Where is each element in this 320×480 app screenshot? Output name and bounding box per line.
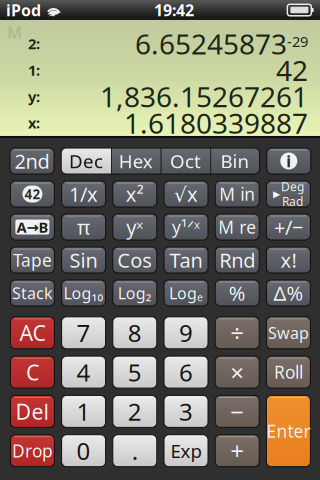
staticText: 7 [77,317,91,349]
button[interactable]: Cos [113,247,157,273]
button[interactable]: Info [267,148,311,174]
staticText: Rnd [219,247,255,273]
staticText: Log₁₀ [64,282,104,304]
button[interactable]: . [113,435,157,467]
staticText: y¹ᐟˣ [172,215,200,238]
button[interactable]: +/− [266,214,310,240]
button[interactable]: Exp [164,435,208,467]
staticText: Tan [169,247,202,273]
staticText: 3 [179,395,193,427]
staticText: Roll [274,361,303,384]
staticText: AC [19,319,45,347]
button[interactable]: 3 [164,395,208,427]
staticText: Cos [117,247,152,273]
button[interactable]: 2 [113,395,157,427]
button[interactable]: C [10,356,54,388]
button[interactable]: Roll [266,356,310,388]
button[interactable]: ÷ [215,317,259,349]
staticText: C [26,358,39,386]
staticText: − [230,395,244,427]
button[interactable]: 9 [164,317,208,349]
button[interactable]: π [62,214,106,240]
staticText: ▶ [273,189,280,199]
staticText: yˣ [126,214,143,240]
staticText: A→B [16,217,48,237]
button[interactable]: − [215,395,259,427]
staticText: M re [218,215,256,238]
button[interactable]: AC [10,317,54,349]
staticText: 1,836.15267261 [100,78,308,115]
staticText: Exp [170,438,201,463]
staticText: 0 [77,435,91,467]
button[interactable]: y¹ᐟˣ [164,214,208,240]
staticText: M [7,22,22,43]
staticText: 42 [24,185,40,203]
button[interactable]: Sin [62,247,106,273]
staticText: Logₑ [169,282,203,304]
staticText: Del [15,397,49,425]
staticText: 6.65245873 [135,25,287,62]
button[interactable]: 5 [113,356,157,388]
staticText: M in [219,182,255,205]
button[interactable]: x! [266,247,310,273]
staticText: % [229,280,246,306]
button[interactable]: Dec [61,148,111,174]
staticText: Sin [70,247,98,273]
staticText: Oct [170,149,201,173]
button[interactable]: Logₑ [164,280,208,306]
button[interactable]: Drop [10,435,54,467]
button[interactable]: √x [164,181,208,207]
button[interactable]: Swap [266,317,310,349]
staticText: Hex [119,149,153,173]
button[interactable]: Enter [266,395,310,467]
staticText: × [230,356,244,388]
button[interactable]: 8 [113,317,157,349]
staticText: iPod [6,0,41,21]
button[interactable]: + [215,435,259,467]
staticText: 6 [179,356,193,388]
staticText: 4 [77,356,91,388]
button[interactable]: Oct [161,148,210,174]
button[interactable]: yˣ [113,214,157,240]
button[interactable]: 4 [62,356,106,388]
staticText: 1.6180339887 [124,104,308,141]
button[interactable]: Log₂ [113,280,157,306]
button[interactable]: Bin [210,148,260,174]
staticText: 2nd [14,148,49,174]
button[interactable]: % [215,280,259,306]
button[interactable]: Δ% [266,280,310,306]
staticText: x: [28,113,40,133]
button[interactable]: 2nd [10,148,54,174]
staticText: ÷ [230,317,244,349]
button[interactable]: x² [113,181,157,207]
button[interactable]: Constant 42 [10,181,54,207]
staticText: √x [174,181,198,207]
staticText: 2 [128,395,142,427]
button[interactable]: Tan [164,247,208,273]
button[interactable]: Convert A to B [10,214,54,240]
staticText: Enter [266,419,310,442]
button[interactable]: 1 [62,395,106,427]
button[interactable]: × [215,356,259,388]
button[interactable]: Hex [111,148,161,174]
staticText: Rad [282,193,303,209]
button[interactable]: Degrees or Radians [266,181,310,207]
button[interactable]: 6 [164,356,208,388]
staticText: Deg [281,179,304,194]
button[interactable]: 7 [62,317,106,349]
button[interactable]: Rnd [215,247,259,273]
button[interactable]: 1/x [62,181,106,207]
button[interactable]: Del [10,395,54,427]
staticText: 9 [179,317,193,349]
button[interactable]: Log₁₀ [62,280,106,306]
button[interactable]: 0 [62,435,106,467]
button[interactable]: Tape [10,247,54,273]
button[interactable]: Stack [10,280,54,306]
button[interactable]: M re [215,214,259,240]
staticText: y: [28,87,40,106]
staticText: 8 [128,317,142,349]
staticText: Dec [69,149,103,173]
staticText: 2: [28,34,40,53]
button[interactable]: M in [215,181,259,207]
staticText: i [286,150,291,172]
